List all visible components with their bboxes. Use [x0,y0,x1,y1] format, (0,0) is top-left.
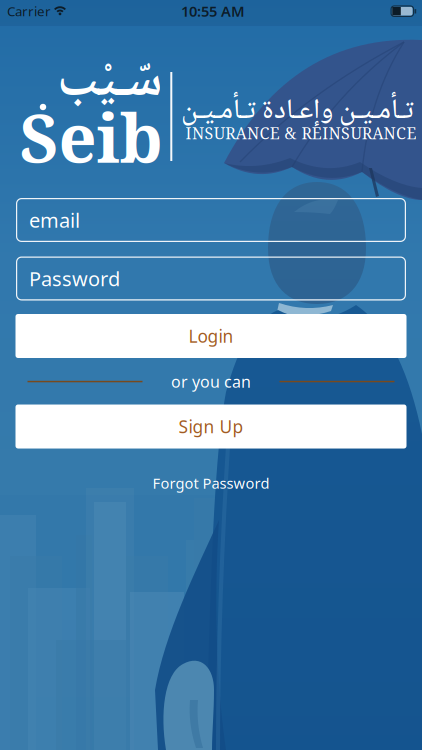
staticText: Seib [19,92,162,182]
staticText: INSURANCE & REINSURANCE [186,122,416,144]
button[interactable]: Forgot Password [152,473,269,493]
staticText: 10:55 AM [181,1,245,21]
staticText: or you can [171,371,251,392]
staticText: Password [29,265,120,292]
staticText: Forgot Password [152,473,269,493]
staticText: Sign Up [178,415,243,438]
staticText: Carrier [7,2,51,20]
button[interactable]: Login [15,314,406,358]
button[interactable]: Password [16,256,406,300]
staticText: تـأمـيـن وإعـادة تـأمـيـن [180,88,413,136]
staticText: email [29,207,80,233]
staticText: Login [188,324,233,347]
button[interactable]: Sign Up [15,404,406,448]
button[interactable]: email [16,198,406,242]
staticText: سّـيْب [56,41,161,127]
